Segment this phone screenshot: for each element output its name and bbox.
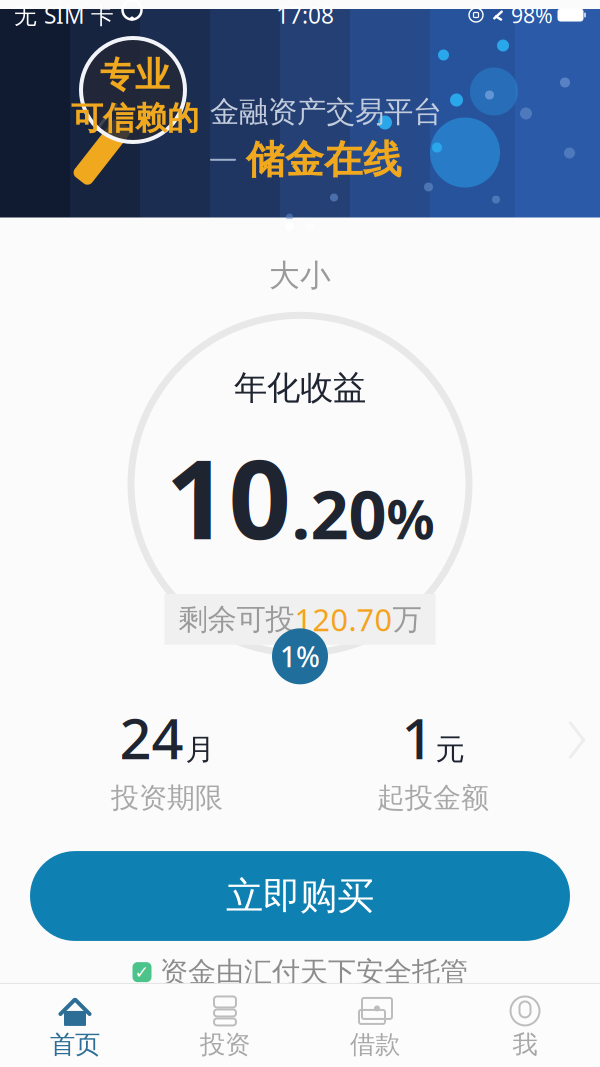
staticText: 元 [435,731,464,767]
staticText: 年化收益 [234,367,366,408]
staticText: ✓ [134,962,149,982]
button[interactable]: 首页 [0,990,150,1066]
staticText: % [386,483,434,554]
staticText: 24 [119,700,183,775]
staticText: 金融资产交易平台 [210,94,442,130]
staticText: 投资 [200,1029,250,1060]
staticText: 我 [512,1029,537,1060]
button[interactable]: 投资 [150,990,300,1066]
staticText: 可信赖的 [71,99,199,138]
staticText: 资金由汇付天下安全托管 [160,955,468,989]
staticText: 借款 [350,1029,400,1060]
button[interactable]: 借款 [300,990,450,1066]
staticText: 起投金额 [377,781,489,815]
staticText: 120.70 [294,599,392,640]
staticText: .20 [291,469,386,558]
button[interactable]: 立即购买 [30,851,570,941]
staticText: 专业 [100,54,170,97]
staticText: 1% [280,638,320,675]
staticText: 万 [392,601,421,637]
staticText: 月 [185,731,214,767]
button[interactable]: 我 [450,990,600,1066]
staticText: 大小 [269,257,331,294]
staticText: 投资期限 [111,781,223,815]
staticText: 17:08 [276,0,334,30]
staticText: 剩余可投 [178,601,294,637]
staticText: 首页 [50,1029,100,1060]
staticText: 10 [165,424,291,569]
staticText: 1 [401,700,433,775]
staticText: 98% [511,1,553,29]
staticText: 立即购买 [226,873,374,919]
staticText: 储金在线 [246,136,402,183]
staticText: 无 SIM 卡 [14,0,114,30]
